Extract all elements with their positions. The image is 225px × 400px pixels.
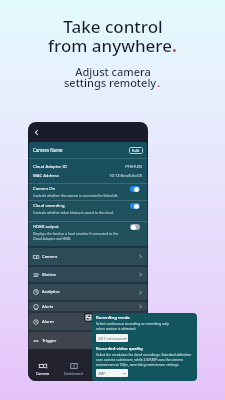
staticText: Trigger <box>42 338 57 344</box>
button[interactable]: HDMI output <box>33 224 140 246</box>
staticText: . <box>172 34 177 57</box>
button[interactable]: Analytics <box>33 284 143 300</box>
staticText: Adjust camera <box>75 64 151 79</box>
staticText: Cloud recording <box>33 203 65 209</box>
staticText: Camera <box>42 254 58 260</box>
staticText: from anywhere <box>48 34 172 57</box>
staticText: 24/7 continuous <box>98 336 126 341</box>
button[interactable]: Alerts <box>33 302 143 311</box>
staticText: PF6HUM <box>125 164 143 170</box>
button[interactable]: Camera Name <box>33 142 143 158</box>
button[interactable]: Camera <box>34 360 52 378</box>
staticText: Select the resolution for cloud recordin… <box>96 352 194 367</box>
staticText: Cloud Adapter ID <box>33 164 67 170</box>
staticText: Camera <box>36 371 50 376</box>
button[interactable]: Back <box>33 129 40 136</box>
button[interactable]: Dashboard <box>62 360 85 378</box>
button[interactable]: Settings <box>84 313 93 322</box>
button[interactable]: 2MP <box>98 369 126 377</box>
staticText: Camera On <box>33 186 56 192</box>
staticText: Edit <box>132 148 140 153</box>
staticText: Recorded video quality <box>96 345 143 351</box>
button[interactable]: Cloud recording <box>33 203 140 221</box>
staticText: Analytics <box>42 289 60 295</box>
staticText: MAC Address <box>33 173 59 179</box>
staticText: Motion <box>42 272 57 278</box>
button[interactable]: Camera <box>33 248 143 265</box>
staticText: Controls whether the camera is connected… <box>33 193 119 197</box>
staticText: Dashboard <box>64 371 83 376</box>
staticText: Recording mode <box>96 314 130 320</box>
button[interactable]: 24/7 continuous <box>98 334 126 342</box>
staticText: Alarm <box>42 319 54 325</box>
staticText: settings remotely <box>64 75 157 90</box>
staticText: 10:12:fb:a8:3c:05 <box>109 173 143 179</box>
staticText: Displays the feed on a local monitor if … <box>33 231 121 241</box>
staticText: 2MP <box>98 371 106 376</box>
staticText: Alerts <box>42 304 54 310</box>
button[interactable]: Motion <box>33 267 143 282</box>
button[interactable]: Edit <box>132 148 140 153</box>
staticText: Select continuous recording or recording… <box>96 321 174 331</box>
staticText: Controls whether video history is saved … <box>33 210 114 214</box>
button[interactable]: Trigger <box>33 332 143 349</box>
staticText: Take control <box>63 15 163 38</box>
button[interactable]: Alarm <box>33 313 143 330</box>
staticText: Camera Name <box>33 147 63 153</box>
staticText: HDMI output <box>33 224 59 230</box>
staticText: . <box>157 75 161 90</box>
button[interactable]: Camera On <box>33 186 140 200</box>
